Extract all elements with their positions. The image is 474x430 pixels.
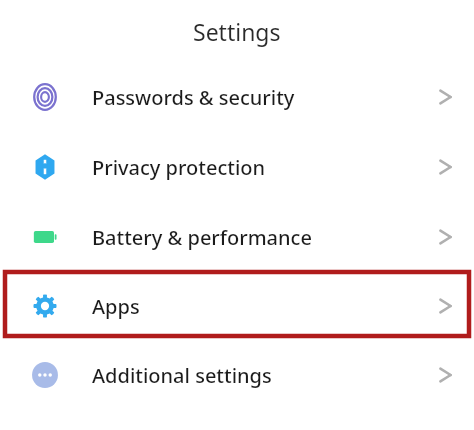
staticText: Settings: [193, 16, 281, 47]
button[interactable]: Passwords & security: [0, 68, 474, 126]
staticText: Battery & performance: [92, 224, 312, 251]
staticText: Apps: [92, 293, 140, 320]
staticText: Privacy protection: [92, 154, 266, 181]
other: Open Apps: [432, 291, 462, 321]
other: Open Additional settings: [432, 360, 462, 390]
button[interactable]: Battery & performance: [0, 208, 474, 266]
other: Open Privacy protection: [432, 152, 462, 182]
button[interactable]: Apps: [0, 277, 474, 335]
button[interactable]: Privacy protection: [0, 138, 474, 196]
staticText: Passwords & security: [92, 84, 295, 111]
other: Open Passwords & security: [432, 82, 462, 112]
other: Open Battery & performance: [432, 222, 462, 252]
staticText: Additional settings: [92, 362, 272, 389]
button[interactable]: Additional settings: [0, 346, 474, 404]
